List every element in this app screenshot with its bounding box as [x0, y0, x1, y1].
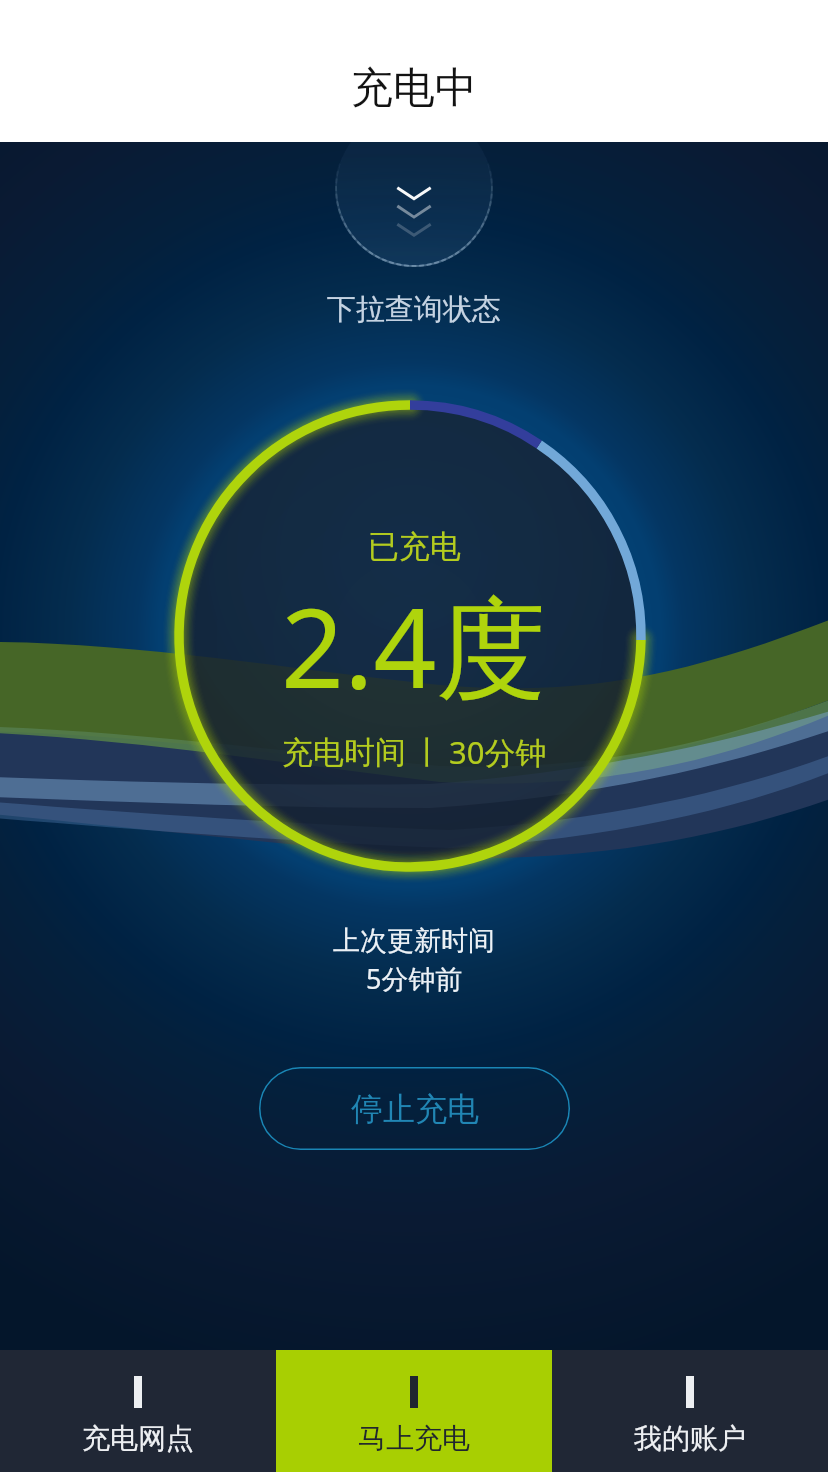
button[interactable]: 我的账户: [552, 1350, 828, 1472]
staticText: 我的账户: [634, 1421, 746, 1456]
staticText: 5分钟前: [366, 960, 463, 997]
staticText: 2.4度: [281, 570, 547, 720]
staticText: 丨: [412, 733, 443, 772]
staticText: 充电中: [351, 62, 477, 115]
staticText: 停止充电: [351, 1089, 479, 1129]
button[interactable]: 马上充电: [276, 1350, 552, 1472]
button[interactable]: 停止充电: [259, 1067, 570, 1150]
staticText: 马上充电: [358, 1421, 470, 1456]
staticText: 充电网点: [82, 1421, 194, 1456]
staticText: 下拉查询状态: [327, 291, 501, 328]
button[interactable]: 充电网点: [0, 1350, 276, 1472]
staticText: 充电时间: [282, 733, 406, 772]
staticText: 已充电: [368, 527, 461, 566]
staticText: 上次更新时间: [333, 924, 495, 958]
staticText: 30分钟: [449, 731, 547, 773]
